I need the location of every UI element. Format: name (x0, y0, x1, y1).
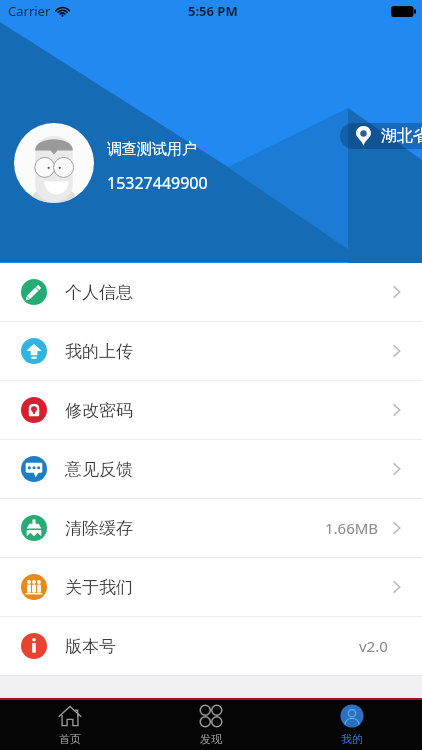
staticText: 修改密码 (65, 400, 133, 421)
staticText: 首页 (59, 732, 81, 746)
staticText: Carrier (8, 2, 51, 20)
button[interactable]: 版本号 (0, 617, 422, 676)
button[interactable]: 意见反馈 (0, 440, 422, 499)
staticText: 个人信息 (65, 282, 133, 303)
staticText: 我的上传 (65, 341, 133, 362)
button[interactable]: 关于我们 (0, 558, 422, 617)
staticText: 15327449900 (107, 172, 208, 194)
staticText: 5:56 PM (188, 2, 238, 20)
staticText: v2.0 (359, 636, 388, 656)
button[interactable]: 湖北省 (340, 123, 422, 149)
staticText: 我的 (341, 732, 363, 746)
staticText: 发现 (200, 732, 222, 746)
button[interactable]: 修改密码 (0, 381, 422, 440)
staticText: 意见反馈 (65, 459, 133, 480)
staticText: 湖北省 (381, 126, 422, 146)
button[interactable]: 清除缓存 (0, 499, 422, 558)
button[interactable]: 个人信息 (0, 263, 422, 322)
button[interactable]: 我的 (281, 700, 422, 750)
button[interactable]: 首页 (0, 700, 140, 750)
staticText: 版本号 (65, 636, 116, 657)
staticText: 清除缓存 (65, 518, 133, 539)
staticText: 调查测试用户 (107, 140, 197, 159)
button[interactable]: 发现 (140, 700, 281, 750)
button[interactable]: 我的上传 (0, 322, 422, 381)
staticText: 1.66MB (325, 518, 379, 538)
staticText: 关于我们 (65, 577, 133, 598)
